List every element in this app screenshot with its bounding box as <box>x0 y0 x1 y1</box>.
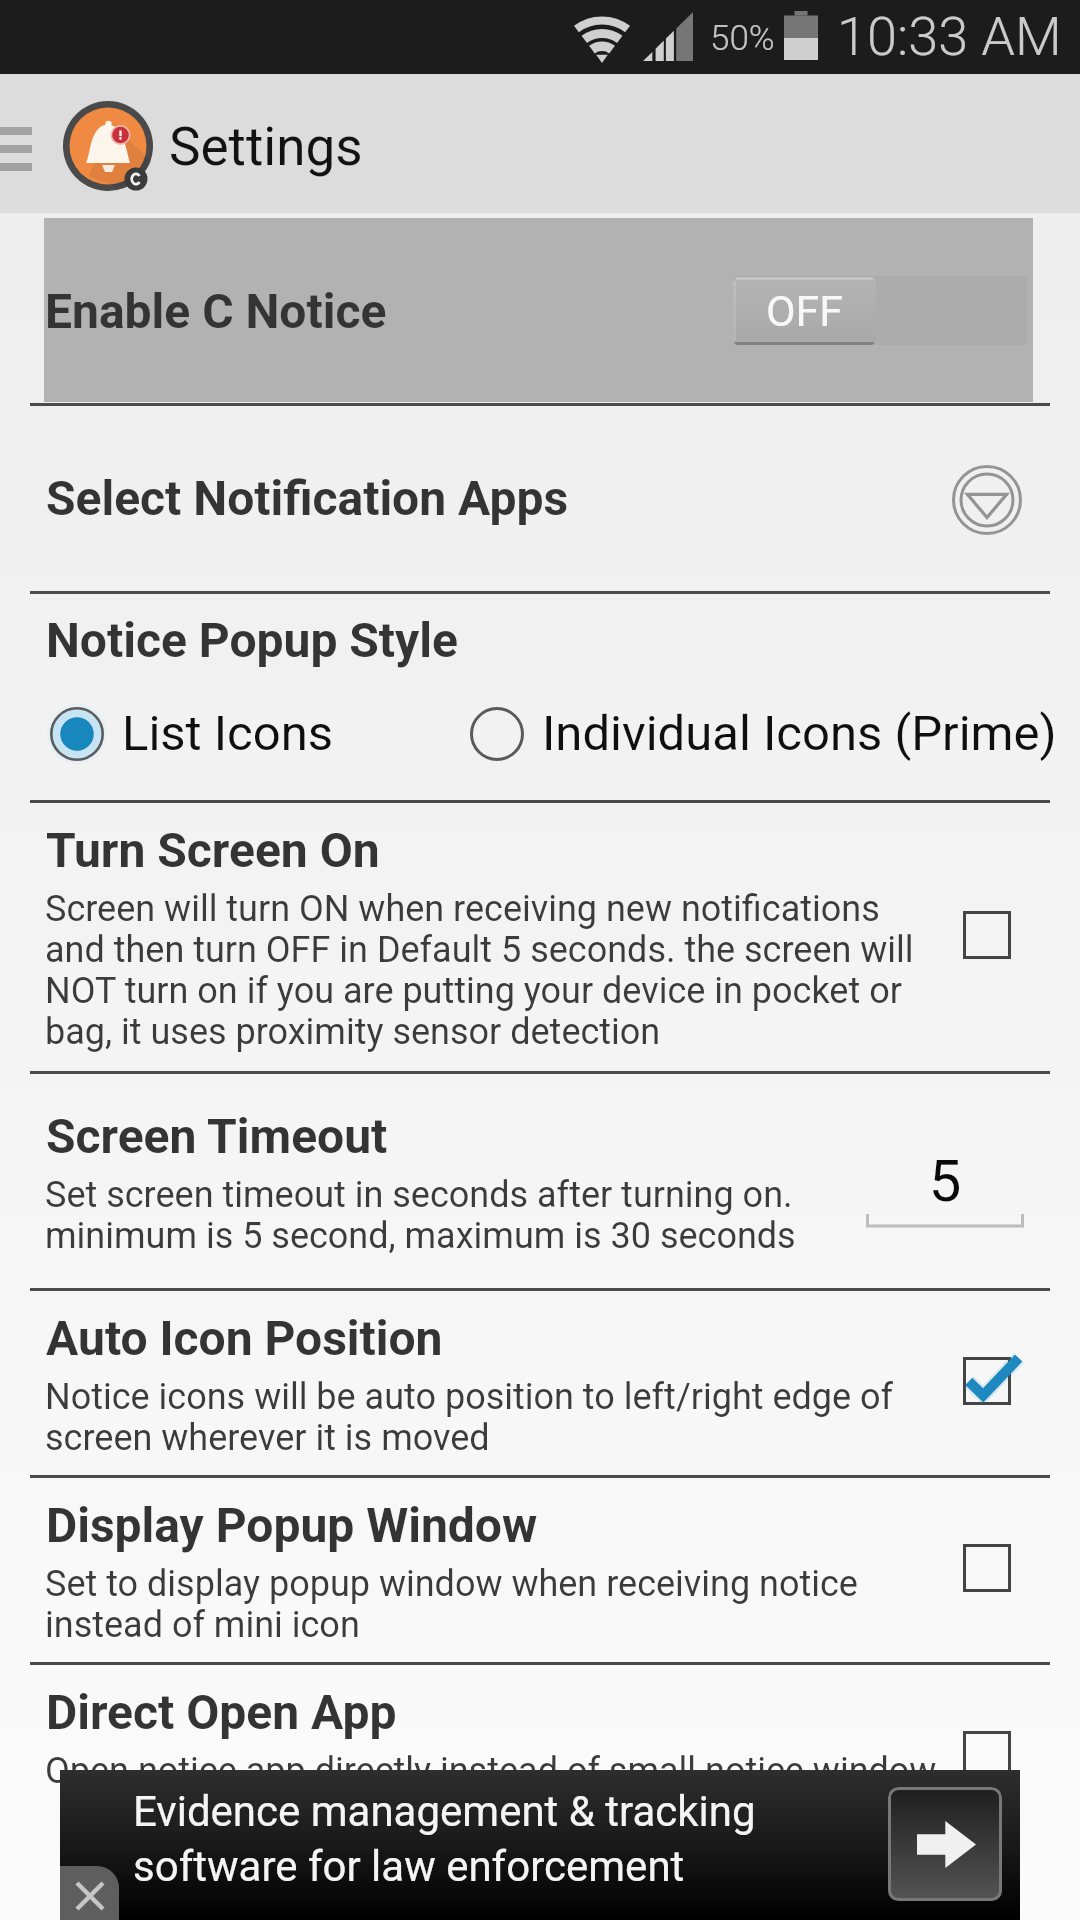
button[interactable]: Display Popup Window <box>0 1475 1080 1662</box>
staticText: Set to display popup window when receivi… <box>45 1563 925 1646</box>
button[interactable]: Screen Timeout <box>0 1071 1080 1288</box>
button[interactable]: List Icons <box>44 697 340 770</box>
button[interactable]: Expand notification apps <box>941 454 1033 546</box>
staticText: Auto Icon Position <box>46 1310 443 1366</box>
staticText: Set screen timeout in seconds after turn… <box>45 1174 835 1257</box>
staticText: List Icons <box>122 705 334 762</box>
staticText: Individual Icons (Prime) <box>542 705 1057 762</box>
button[interactable]: Close advertisement <box>60 1866 119 1920</box>
staticText: 5 <box>866 1147 1024 1215</box>
button[interactable]: Open advertisement <box>888 1787 1002 1901</box>
staticText: Evidence management & tracking <box>133 1787 756 1836</box>
staticText: Screen will turn ON when receiving new n… <box>45 888 925 1053</box>
staticText: Notice Popup Style <box>46 612 458 668</box>
button[interactable]: Select Notification Apps <box>0 403 1080 591</box>
staticText: Screen Timeout <box>46 1108 388 1164</box>
button[interactable]: Auto Icon Position <box>0 1288 1080 1475</box>
button[interactable]: Turn Screen On <box>0 800 1080 1071</box>
staticText: Direct Open App <box>46 1684 397 1740</box>
staticText: 50% <box>710 18 775 59</box>
staticText: Open notice app directly instead of smal… <box>45 1750 937 1792</box>
button[interactable]: Enable C Notice <box>44 218 1033 402</box>
staticText: Turn Screen On <box>46 822 380 878</box>
button[interactable]: Navigation menu <box>0 74 56 213</box>
staticText: Select Notification Apps <box>46 470 569 526</box>
staticText: OFF <box>766 286 844 336</box>
button[interactable]: Direct Open App <box>0 1662 1080 1849</box>
staticText: software for law enforcement <box>133 1842 685 1891</box>
button[interactable]: Evidence management & tracking <box>60 1770 1020 1920</box>
staticText: 10:33 AM <box>837 5 1062 68</box>
staticText: Settings <box>169 116 363 178</box>
staticText: Enable C Notice <box>45 283 387 339</box>
staticText: Notice icons will be auto position to le… <box>45 1376 925 1459</box>
button[interactable]: 5 <box>866 1147 1024 1226</box>
button[interactable]: OFF <box>733 276 1027 345</box>
button[interactable]: Individual Icons (Prime) <box>464 697 1063 770</box>
staticText: Display Popup Window <box>46 1497 538 1553</box>
